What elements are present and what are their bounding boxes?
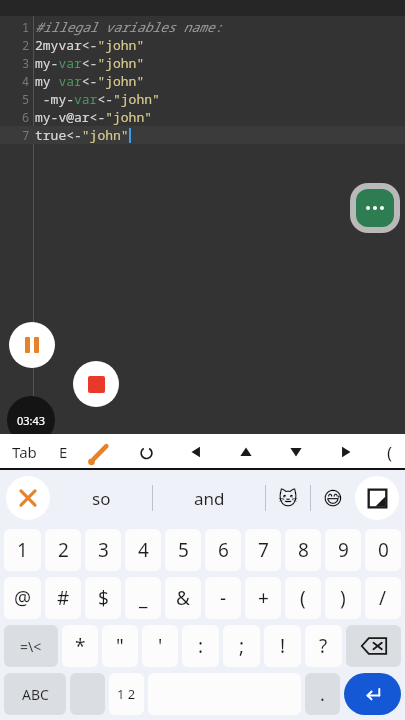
button[interactable]: Redo xyxy=(131,437,161,467)
button[interactable]: ( xyxy=(381,441,399,464)
staticText: # xyxy=(57,585,70,611)
button[interactable]: @ xyxy=(4,577,41,619)
button[interactable]: " xyxy=(102,625,138,667)
button[interactable]: 1 xyxy=(4,529,41,571)
staticText: 1 xyxy=(22,19,30,35)
button[interactable]: Move up xyxy=(231,437,261,467)
staticText: so xyxy=(92,487,111,510)
staticText: $ xyxy=(98,585,109,611)
button[interactable]: More options xyxy=(350,183,400,233)
button[interactable]: # xyxy=(45,577,81,619)
staticText: & xyxy=(176,585,190,611)
staticText: 2 xyxy=(58,537,69,563)
button[interactable]: ) xyxy=(325,577,361,619)
staticText: 1 xyxy=(17,537,28,563)
button[interactable]: + xyxy=(245,577,281,619)
staticText: 3 xyxy=(98,537,109,563)
staticText: @ xyxy=(14,585,32,611)
button[interactable]: . xyxy=(305,673,340,715)
button[interactable]: 6 xyxy=(205,529,241,571)
staticText: : xyxy=(198,633,204,659)
button[interactable]: 9 xyxy=(325,529,361,571)
staticText: 0 xyxy=(378,537,389,563)
staticText: 1 2 xyxy=(117,685,136,703)
button[interactable]: Sweat smile emoji xyxy=(311,470,355,526)
button[interactable]: and xyxy=(153,470,265,526)
staticText: ( xyxy=(300,585,306,611)
button[interactable]: ! xyxy=(264,625,301,667)
staticText: ; xyxy=(239,633,245,659)
button[interactable]: 2 xyxy=(45,529,81,571)
staticText: 6 xyxy=(22,109,30,125)
staticText: ABC xyxy=(22,685,49,704)
staticText: my-var<-"john" xyxy=(35,54,145,72)
staticText: my-v@ar<-"john" xyxy=(35,108,153,126)
button[interactable]: $ xyxy=(85,577,121,619)
staticText: ) xyxy=(340,585,346,611)
staticText: - xyxy=(220,585,227,611)
staticText: #illegal variables name: xyxy=(35,18,223,36)
button[interactable]: Tab xyxy=(8,442,41,462)
button[interactable]: * xyxy=(62,625,98,667)
button[interactable]: so xyxy=(50,470,152,526)
button[interactable]: 7 xyxy=(245,529,281,571)
staticText: 7 xyxy=(258,537,269,563)
staticText: ( xyxy=(387,441,393,464)
staticText: 5 xyxy=(178,537,189,563)
staticText: + xyxy=(258,585,269,611)
button[interactable]: - xyxy=(205,577,241,619)
staticText: my var<-"john" xyxy=(35,72,145,90)
button[interactable]: & xyxy=(165,577,201,619)
staticText: 2 xyxy=(22,37,30,53)
button[interactable]: Tools xyxy=(6,476,50,520)
staticText: =\< xyxy=(20,637,42,656)
button[interactable]: ( xyxy=(285,577,321,619)
button[interactable]: Undo xyxy=(85,437,115,467)
button[interactable]: 3 xyxy=(85,529,121,571)
button[interactable]: Move down xyxy=(281,437,311,467)
button[interactable]: 4 xyxy=(125,529,161,571)
button[interactable]: Enter xyxy=(344,673,401,715)
button[interactable]: _ xyxy=(125,577,161,619)
button[interactable]: : xyxy=(182,625,219,667)
staticText: ? xyxy=(319,633,328,659)
button[interactable]: 1 2 xyxy=(109,673,144,715)
staticText: _ xyxy=(139,585,148,611)
staticText: and xyxy=(194,487,225,510)
staticText: 03:43 xyxy=(17,413,46,428)
staticText: . xyxy=(320,682,325,707)
staticText: 🐱 xyxy=(278,487,298,509)
staticText: ' xyxy=(158,633,163,659)
staticText: 5 xyxy=(22,91,30,107)
button[interactable]: / xyxy=(365,577,401,619)
staticText: 6 xyxy=(218,537,229,563)
button[interactable]: 8 xyxy=(285,529,321,571)
button[interactable]: 5 xyxy=(165,529,201,571)
staticText: 4 xyxy=(138,537,149,563)
button[interactable]: 0 xyxy=(365,529,401,571)
button[interactable]: Pause recording xyxy=(9,322,55,368)
staticText: true<-"john" xyxy=(35,126,129,144)
button[interactable]: E xyxy=(55,442,72,462)
staticText: 2myvar<-"john" xyxy=(35,36,145,54)
button[interactable]: Stop recording xyxy=(73,361,119,407)
staticText: ! xyxy=(280,633,286,659)
staticText: 9 xyxy=(338,537,349,563)
staticText: 7 xyxy=(22,127,30,143)
button[interactable]: ; xyxy=(223,625,260,667)
button[interactable]: Backspace xyxy=(346,625,401,667)
button[interactable]: Expand xyxy=(355,476,399,520)
button[interactable]: ? xyxy=(305,625,342,667)
staticText: E xyxy=(59,442,68,462)
button[interactable]: Move right xyxy=(331,437,361,467)
button[interactable]: ' xyxy=(142,625,178,667)
button[interactable]: Move left xyxy=(181,437,211,467)
button[interactable]: Brush xyxy=(74,437,121,473)
button[interactable]: Cat emoji xyxy=(266,470,310,526)
button[interactable]: ABC xyxy=(4,673,66,715)
staticText: / xyxy=(379,585,387,611)
staticText: 4 xyxy=(22,73,30,89)
button[interactable]: =\< xyxy=(4,625,58,667)
